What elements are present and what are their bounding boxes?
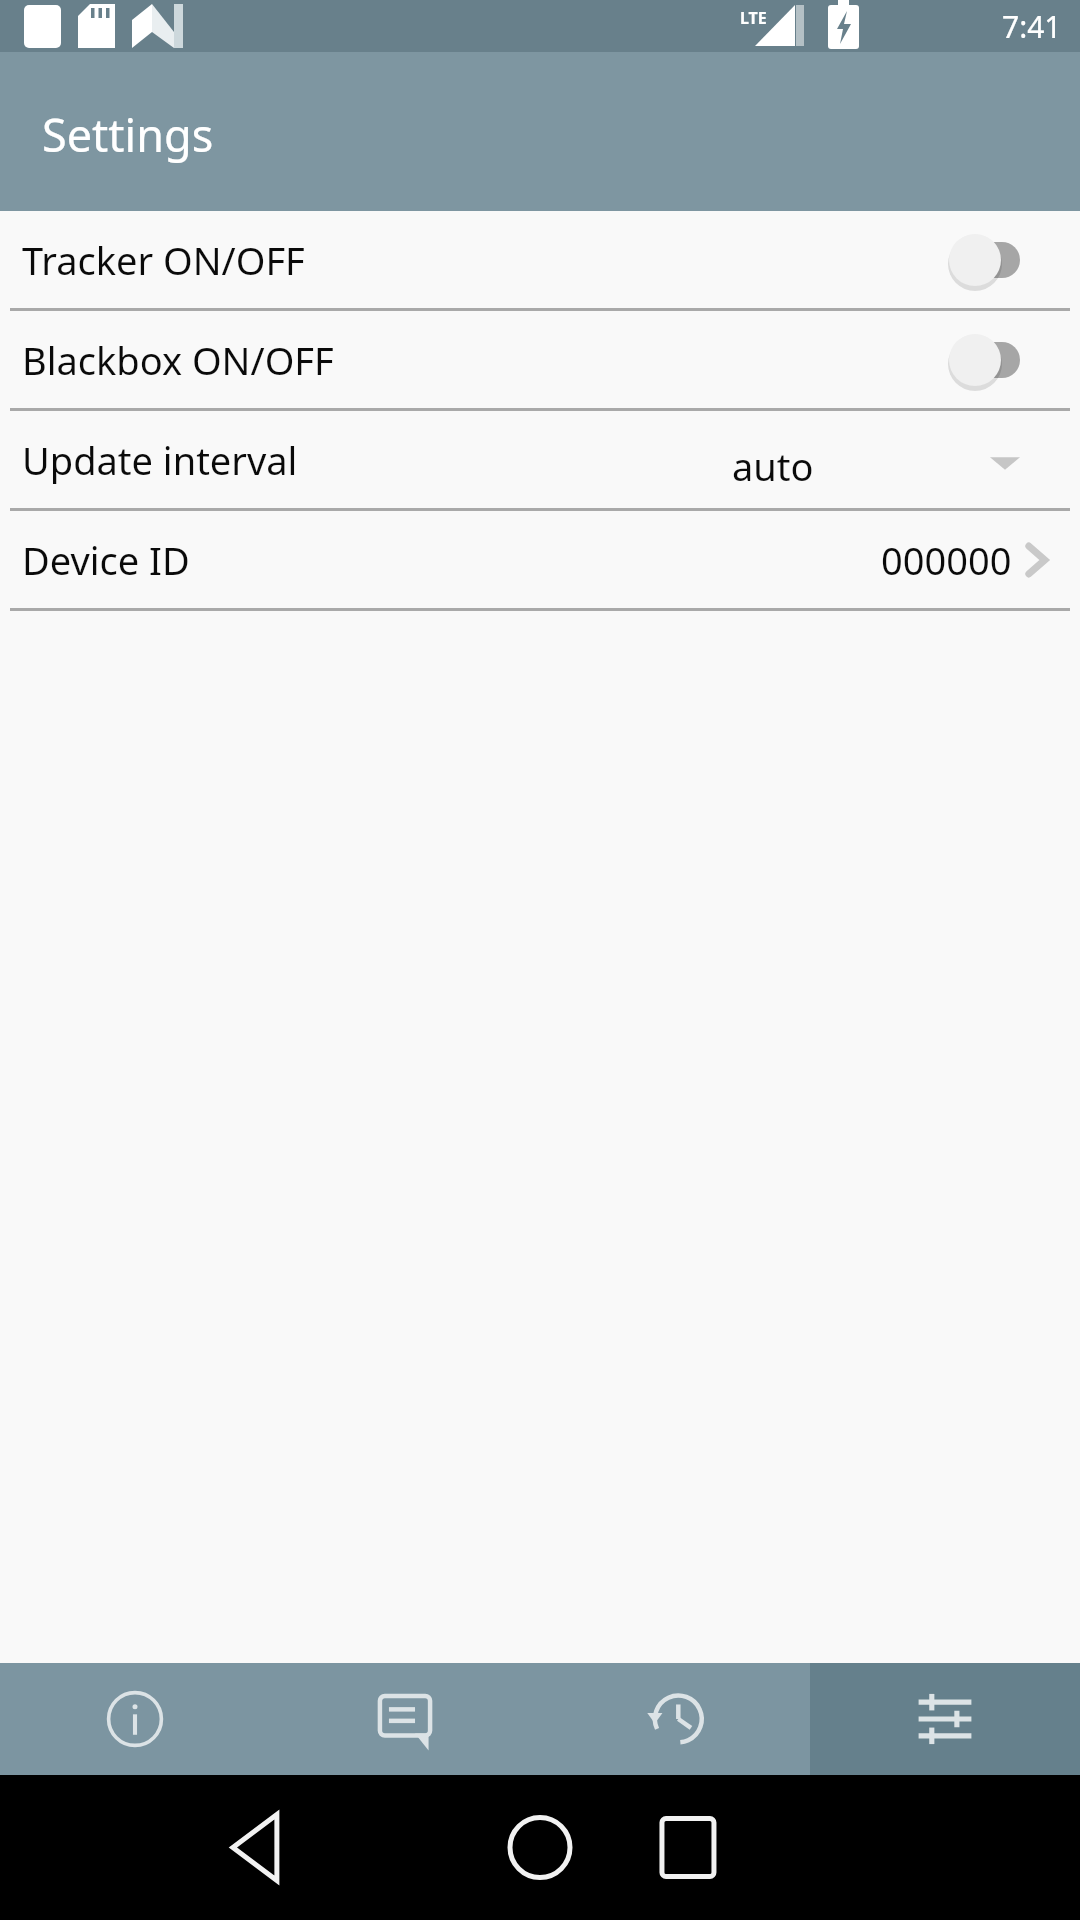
staticText: auto bbox=[732, 440, 814, 492]
button[interactable]: History bbox=[540, 1663, 810, 1775]
button[interactable]: Messages bbox=[270, 1663, 540, 1775]
staticText: Update interval bbox=[22, 434, 298, 486]
staticText: Settings bbox=[42, 104, 214, 165]
button[interactable]: Settings bbox=[810, 1663, 1080, 1775]
button[interactable]: Device ID bbox=[0, 511, 1080, 608]
staticText: Blackbox ON/OFF bbox=[22, 334, 938, 386]
staticText: LTE bbox=[740, 7, 767, 29]
staticText: 000000 bbox=[881, 534, 1012, 586]
staticText: 7:41 bbox=[1002, 6, 1062, 47]
button[interactable]: Tracker ON/OFF bbox=[0, 211, 1080, 308]
button[interactable]: Update interval bbox=[0, 411, 1080, 508]
button[interactable]: Info bbox=[0, 1663, 270, 1775]
button[interactable]: Blackbox ON/OFF bbox=[0, 311, 1080, 408]
staticText: Device ID bbox=[22, 534, 190, 586]
staticText: Tracker ON/OFF bbox=[22, 234, 938, 286]
